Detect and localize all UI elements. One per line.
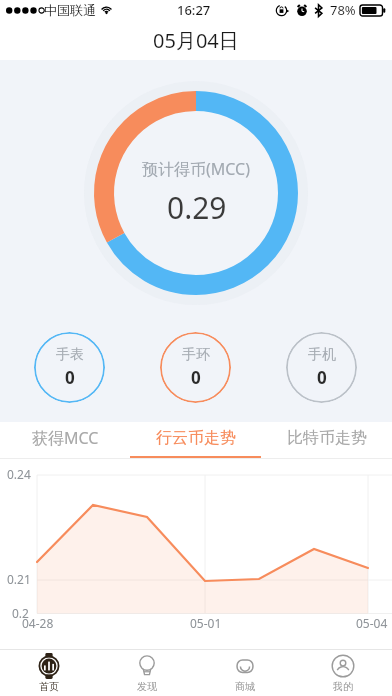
button[interactable]: 行云币走势	[130, 422, 261, 459]
staticText: 0	[65, 366, 75, 389]
staticText: 中国联通	[44, 2, 96, 18]
button[interactable]: 手表	[34, 332, 105, 403]
staticText: 手环	[182, 346, 210, 364]
button[interactable]: 手环	[160, 332, 231, 403]
staticText: 0.2	[12, 605, 29, 621]
button[interactable]: 商城	[196, 650, 294, 696]
button[interactable]: 获得MCC	[0, 422, 130, 459]
staticText: 我的	[333, 680, 353, 693]
staticText: 78%	[330, 1, 356, 19]
button[interactable]: 比特币走势	[261, 422, 392, 459]
button[interactable]: 首页	[0, 650, 98, 696]
staticText: 0.24	[7, 466, 31, 482]
staticText: 比特币走势	[287, 428, 367, 448]
staticText: 行云币走势	[156, 428, 236, 448]
other: 发现	[135, 654, 159, 678]
staticText: 0.29	[167, 187, 227, 228]
staticText: 0	[191, 366, 201, 389]
other: 我的	[331, 654, 355, 678]
other: 首页	[37, 654, 61, 678]
button[interactable]: 我的	[294, 650, 392, 696]
staticText: 05-01	[190, 615, 222, 631]
staticText: 0	[317, 366, 327, 389]
staticText: 获得MCC	[32, 427, 99, 449]
button[interactable]: 发现	[98, 650, 196, 696]
staticText: 0.21	[7, 571, 31, 587]
staticText: 商城	[235, 680, 255, 693]
staticText: 手机	[308, 346, 336, 364]
other: 商城	[233, 654, 257, 678]
staticText: 05-04	[356, 615, 388, 631]
staticText: 发现	[137, 680, 157, 693]
staticText: 05月04日	[153, 27, 239, 54]
button[interactable]: 手机	[286, 332, 357, 403]
staticText: 16:27	[177, 1, 211, 19]
staticText: 预计得币(MCC)	[142, 158, 251, 180]
staticText: 手表	[56, 346, 84, 364]
staticText: 首页	[39, 680, 59, 693]
staticText: 04-28	[22, 615, 54, 631]
